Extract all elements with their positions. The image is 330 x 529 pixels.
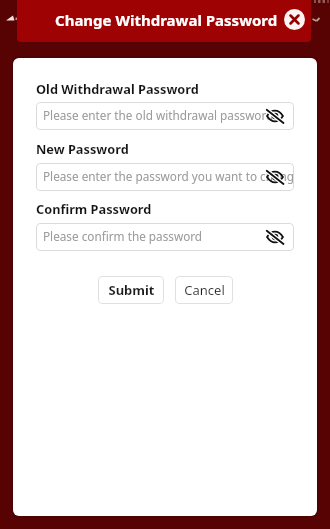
button[interactable]: Toggle password visibility xyxy=(266,228,284,246)
button[interactable]: Cancel xyxy=(175,276,233,304)
staticText: Old Withdrawal Password xyxy=(36,80,199,97)
staticText: Cancel xyxy=(184,281,225,299)
button[interactable]: Please confirm the password xyxy=(36,223,294,251)
button[interactable]: Please enter the old withdrawal password xyxy=(36,102,294,130)
staticText: Confirm Password xyxy=(36,200,152,217)
button[interactable]: Toggle password visibility xyxy=(266,168,284,186)
staticText: Submit xyxy=(108,281,155,299)
button[interactable]: Please enter the password you want to ch… xyxy=(36,163,294,191)
staticText: New Password xyxy=(36,140,129,157)
button[interactable]: Submit xyxy=(98,276,164,304)
button[interactable]: Close xyxy=(284,9,305,30)
staticText: Please enter the old withdrawal password xyxy=(43,107,274,123)
staticText: Change Withdrawal Password xyxy=(55,10,278,30)
button[interactable]: Toggle password visibility xyxy=(266,107,284,125)
staticText: Please enter the password you want to ch… xyxy=(43,168,294,184)
staticText: Please confirm the password xyxy=(43,228,203,244)
